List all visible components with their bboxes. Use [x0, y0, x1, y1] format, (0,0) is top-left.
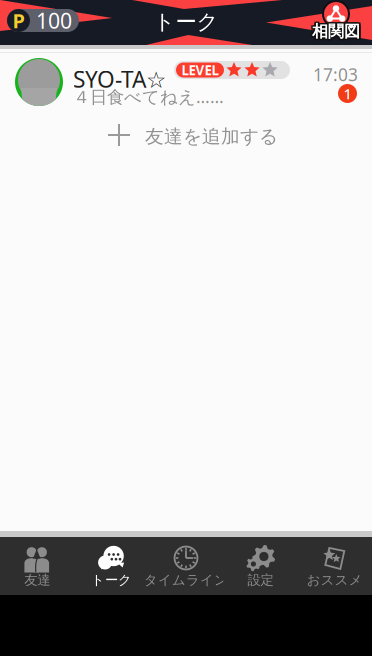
button[interactable]: おススメ — [298, 537, 372, 595]
button[interactable]: 友達 — [0, 537, 74, 595]
staticText: SYO-TA☆ — [73, 64, 166, 94]
staticText: 相関図 — [312, 22, 360, 41]
staticText: 友達を追加する — [145, 125, 278, 148]
button[interactable]: SYO-TA☆ — [0, 53, 372, 111]
staticText: 相関図 — [313, 23, 361, 43]
staticText: 友達 — [24, 572, 50, 588]
staticText: 相関図 — [311, 20, 359, 40]
button[interactable]: 相関図 — [314, 1, 358, 41]
staticText: 設定 — [247, 572, 273, 588]
staticText: 相関図 — [312, 23, 360, 43]
staticText: 17:03 — [313, 63, 358, 86]
staticText: タイムライン — [144, 572, 228, 588]
staticText: トーク — [91, 572, 132, 588]
staticText: 100 — [36, 6, 72, 35]
staticText: 相関図 — [313, 20, 361, 40]
staticText: 相関図 — [311, 23, 359, 43]
staticText: 相関図 — [313, 22, 361, 41]
button[interactable]: タイムライン — [149, 537, 223, 595]
button[interactable]: 設定 — [223, 537, 298, 595]
staticText: LEVEL — [181, 61, 218, 79]
staticText: ４日食べてねえ…… — [73, 85, 224, 108]
staticText: 相関図 — [311, 22, 359, 41]
staticText: 1 — [343, 84, 351, 103]
staticText: P — [12, 7, 24, 34]
staticText: トーク — [153, 9, 218, 35]
staticText: おススメ — [307, 572, 363, 588]
staticText: 相関図 — [312, 20, 360, 40]
button[interactable]: トーク — [74, 537, 149, 595]
button[interactable]: 友達を追加する — [0, 111, 372, 159]
